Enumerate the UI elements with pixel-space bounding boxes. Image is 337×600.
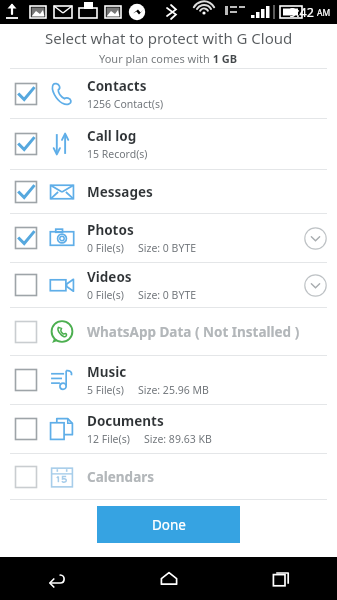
staticText: Size: 0 BYTE: [138, 288, 197, 302]
staticText: Videos: [87, 268, 132, 286]
staticText: 0 File(s): [87, 288, 124, 302]
staticText: Calendars: [87, 468, 155, 486]
button[interactable]: Call log: [0, 119, 337, 169]
button[interactable]: Videos: [0, 263, 337, 307]
button[interactable]: Photos: [0, 214, 337, 262]
staticText: 1256 Contact(s): [87, 97, 164, 111]
button[interactable]: Recent apps: [225, 557, 337, 600]
staticText: Your plan comes with 1 GB: [99, 51, 238, 66]
staticText: 15 Record(s): [87, 147, 148, 161]
button[interactable]: Expand Videos: [297, 267, 333, 303]
button[interactable]: WhatsApp Data ( Not Installed ): [0, 308, 337, 355]
staticText: Documents: [87, 412, 164, 430]
staticText: 5 File(s): [87, 383, 124, 397]
staticText: Size: 89.63 KB: [144, 432, 212, 446]
staticText: Music: [87, 363, 127, 381]
staticText: Messages: [87, 183, 153, 201]
button[interactable]: Back: [0, 557, 113, 600]
button[interactable]: Messages: [0, 170, 337, 213]
button[interactable]: Calendars: [0, 454, 337, 499]
staticText: 12 File(s): [87, 432, 130, 446]
staticText: Call log: [87, 127, 137, 145]
button[interactable]: Contacts: [0, 69, 337, 118]
staticText: AM: [317, 7, 331, 19]
button[interactable]: Expand Photos: [297, 220, 333, 256]
button[interactable]: Home: [113, 557, 225, 600]
button[interactable]: Music: [0, 356, 337, 404]
staticText: Contacts: [87, 77, 147, 95]
staticText: Done: [152, 516, 186, 534]
staticText: Size: 25.96 MB: [138, 383, 209, 397]
button[interactable]: Documents: [0, 405, 337, 453]
staticText: WhatsApp Data ( Not Installed ): [87, 323, 300, 341]
button[interactable]: Done: [97, 506, 240, 543]
staticText: 0 File(s): [87, 241, 124, 255]
staticText: Size: 0 BYTE: [138, 241, 197, 255]
staticText: Select what to protect with G Cloud: [45, 28, 293, 48]
staticText: 9:42: [289, 4, 314, 21]
staticText: Photos: [87, 221, 134, 239]
